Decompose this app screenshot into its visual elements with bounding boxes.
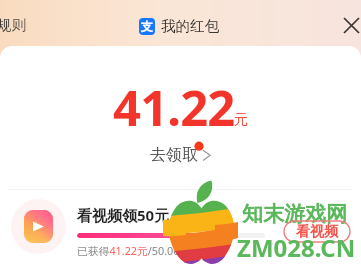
staticText: 已获得41.22元/50.00元 (77, 243, 191, 258)
staticText: 支 (141, 19, 153, 34)
staticText: 看视频 (296, 223, 338, 241)
button[interactable]: 去领取 (150, 145, 212, 165)
staticText: 我的红包 (161, 17, 219, 35)
button[interactable]: 规则 (0, 12, 27, 38)
button[interactable]: Close (337, 11, 361, 39)
staticText: 41.22 (113, 74, 235, 141)
staticText: 元 (234, 111, 248, 129)
button[interactable]: 看视频领50元 (0, 194, 361, 266)
staticText: 去领取 (150, 145, 198, 165)
staticText: 知末游戏网 (242, 201, 347, 227)
staticText: ZM028.CN (237, 231, 356, 264)
staticText: 看视频领50元 (77, 205, 170, 225)
